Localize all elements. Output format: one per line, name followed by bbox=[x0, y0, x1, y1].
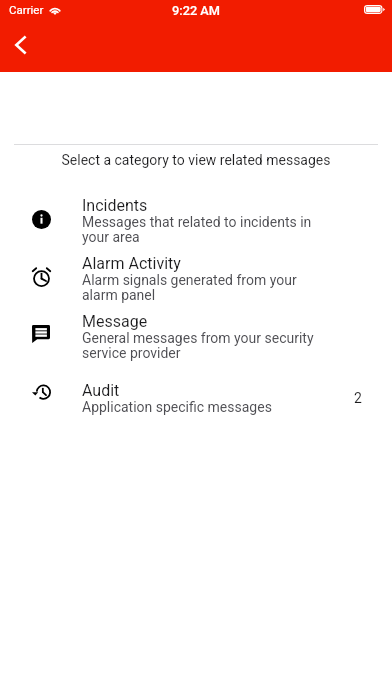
button[interactable]: Alarm Activity bbox=[0, 249, 392, 307]
staticText: 9:22 AM bbox=[172, 3, 221, 18]
staticText: Application specific messages bbox=[82, 399, 318, 415]
staticText: Carrier bbox=[9, 3, 44, 16]
button[interactable]: Back bbox=[3, 27, 38, 62]
staticText: Message bbox=[82, 312, 318, 331]
staticText: Audit bbox=[82, 381, 318, 400]
staticText: Alarm signals generated from your alarm … bbox=[82, 272, 318, 303]
staticText: 2 bbox=[354, 390, 362, 406]
staticText: Messages that related to incidents in yo… bbox=[82, 214, 318, 245]
staticText: Select a category to view related messag… bbox=[61, 152, 331, 168]
staticText: Alarm Activity bbox=[82, 254, 318, 273]
button[interactable]: Incidents bbox=[0, 191, 392, 249]
staticText: General messages from your security serv… bbox=[82, 330, 318, 361]
staticText: Incidents bbox=[82, 196, 318, 215]
button[interactable]: Audit bbox=[0, 365, 392, 423]
button[interactable]: Message bbox=[0, 307, 392, 365]
